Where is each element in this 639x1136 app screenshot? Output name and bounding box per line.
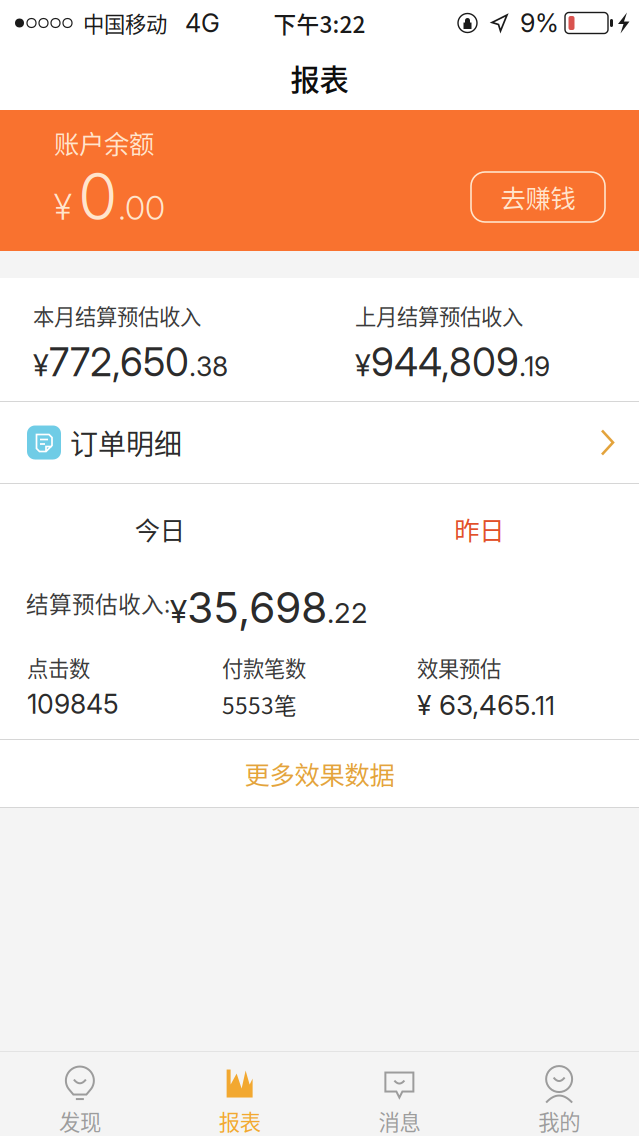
button[interactable]: 今日 (0, 484, 319, 574)
staticText: 9% (520, 8, 559, 38)
staticText: 报表 (290, 57, 348, 99)
staticText: 下午3:22 (273, 7, 365, 39)
staticText: 35,698 (187, 582, 327, 633)
staticText: 中国移动 (83, 8, 167, 38)
staticText: ¥ (170, 592, 187, 631)
staticText: 772,650 (49, 339, 189, 386)
staticText: 上月结算预估收入 (355, 300, 523, 331)
button[interactable]: 订单明细 (0, 402, 639, 483)
button[interactable]: 昨日 (319, 484, 639, 574)
button[interactable]: 去赚钱 (471, 172, 605, 222)
staticText: 结算预估收入: (26, 586, 170, 619)
button[interactable]: 发现 (0, 1052, 160, 1136)
staticText: 944,809 (371, 339, 519, 386)
staticText: 我的 (538, 1106, 580, 1136)
staticText: 账户余额 (54, 124, 154, 161)
staticText: 消息 (378, 1106, 420, 1136)
staticText: 0 (78, 158, 118, 235)
staticText: 发现 (59, 1106, 101, 1136)
staticText: ¥ (417, 689, 431, 721)
button[interactable]: 我的 (479, 1052, 639, 1136)
staticText: 报表 (219, 1106, 261, 1136)
staticText: 109845 (27, 688, 119, 720)
staticText: .11 (530, 690, 555, 721)
staticText: .00 (118, 187, 165, 228)
button[interactable]: 更多效果数据 (0, 740, 639, 807)
staticText: ¥ (355, 348, 371, 383)
staticText: .19 (519, 350, 550, 383)
staticText: 今日 (135, 511, 185, 547)
staticText: 昨日 (454, 511, 504, 547)
staticText: 更多效果数据 (244, 755, 394, 792)
staticText: 4G (185, 8, 220, 38)
staticText: .38 (189, 350, 228, 383)
staticText: 效果预估 (417, 652, 501, 683)
staticText: 5553笔 (222, 688, 297, 721)
staticText: ¥ (54, 186, 72, 228)
button[interactable]: 报表 (160, 1052, 320, 1136)
staticText: 63,465 (431, 688, 530, 722)
staticText: ¥ (33, 348, 49, 383)
staticText: .22 (327, 596, 368, 630)
button[interactable]: 消息 (319, 1052, 479, 1136)
staticText: 订单明细 (70, 422, 182, 463)
staticText: 点击数 (27, 652, 90, 683)
staticText: 本月结算预估收入 (33, 300, 201, 331)
staticText: 去赚钱 (500, 179, 575, 215)
staticText: 付款笔数 (222, 652, 306, 683)
